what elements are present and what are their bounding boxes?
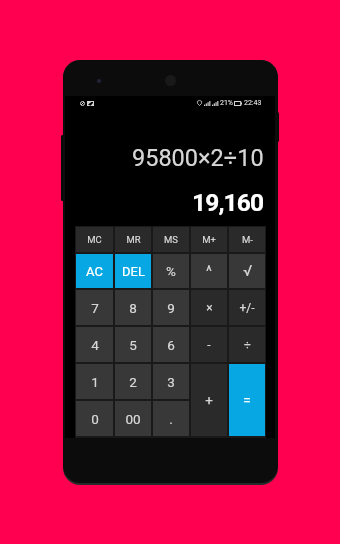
button[interactable]: M- xyxy=(229,227,265,252)
button[interactable]: MS xyxy=(153,227,189,252)
staticText: M+ xyxy=(202,234,216,245)
button[interactable]: +/- xyxy=(229,290,265,325)
staticText: 8 xyxy=(129,300,137,316)
button[interactable]: 7 xyxy=(76,290,113,325)
staticText: 21% xyxy=(220,99,233,107)
staticText: % xyxy=(166,263,176,279)
staticText: 5 xyxy=(129,337,137,353)
staticText: = xyxy=(243,392,251,408)
button[interactable]: ^ xyxy=(191,254,227,288)
staticText: 2 xyxy=(129,374,137,390)
staticText: 4 xyxy=(91,337,99,353)
button[interactable]: M+ xyxy=(191,227,227,252)
button[interactable]: 8 xyxy=(115,290,151,325)
staticText: AC xyxy=(86,264,103,279)
staticText: 00 xyxy=(125,411,141,427)
staticText: MR xyxy=(126,234,141,245)
staticText: MC xyxy=(87,234,102,245)
button[interactable]: 3 xyxy=(153,364,189,399)
staticText: M- xyxy=(242,234,253,245)
button[interactable]: 2 xyxy=(115,364,151,399)
button[interactable]: × xyxy=(191,290,227,325)
staticText: DEL xyxy=(122,264,145,279)
button[interactable]: DEL xyxy=(115,254,151,288)
staticText: 6 xyxy=(167,337,175,353)
button[interactable]: 4 xyxy=(76,327,113,362)
staticText: ^ xyxy=(206,263,212,279)
staticText: √ xyxy=(243,262,252,280)
button[interactable]: . xyxy=(153,401,189,436)
button[interactable]: MR xyxy=(115,227,151,252)
staticText: 19,160 xyxy=(192,188,264,217)
button[interactable]: 0 xyxy=(76,401,113,436)
other: Do not disturb xyxy=(80,101,85,106)
staticText: 1 xyxy=(91,374,99,390)
staticText: MS xyxy=(164,234,178,245)
staticText: . xyxy=(169,411,173,427)
staticText: - xyxy=(207,338,211,352)
button[interactable]: 5 xyxy=(115,327,151,362)
staticText: 9 xyxy=(167,300,175,316)
button[interactable]: + xyxy=(191,364,227,436)
button[interactable]: % xyxy=(153,254,189,288)
button[interactable]: AC xyxy=(76,254,113,288)
staticText: × xyxy=(206,301,213,315)
staticText: +/- xyxy=(239,301,255,315)
button[interactable]: √ xyxy=(229,254,265,288)
staticText: + xyxy=(205,392,213,408)
staticText: ÷ xyxy=(244,338,251,352)
staticText: 3 xyxy=(167,374,175,390)
button[interactable]: 9 xyxy=(153,290,189,325)
button[interactable]: ÷ xyxy=(229,327,265,362)
staticText: 95800×2÷10 xyxy=(132,144,264,172)
button[interactable]: - xyxy=(191,327,227,362)
button[interactable]: 00 xyxy=(115,401,151,436)
staticText: 22:43 xyxy=(244,99,262,107)
button[interactable]: = xyxy=(229,364,265,436)
button[interactable]: 6 xyxy=(153,327,189,362)
staticText: 7 xyxy=(91,300,99,316)
button[interactable]: MC xyxy=(76,227,113,252)
button[interactable]: 1 xyxy=(76,364,113,399)
staticText: 0 xyxy=(91,411,99,427)
